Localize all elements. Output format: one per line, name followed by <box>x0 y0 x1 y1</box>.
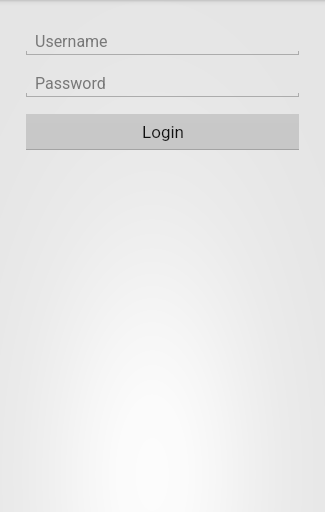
button[interactable]: Login <box>26 114 299 150</box>
staticText: Username <box>35 32 108 51</box>
button[interactable]: Password <box>26 67 299 97</box>
staticText: Login <box>142 122 184 142</box>
staticText: Password <box>35 74 106 93</box>
button[interactable]: Username <box>26 25 299 55</box>
